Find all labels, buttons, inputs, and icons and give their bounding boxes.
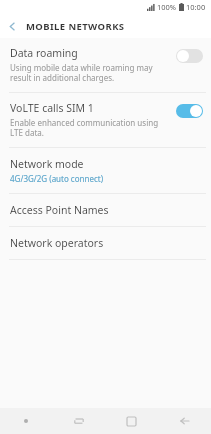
staticText: Data roaming [10,46,78,60]
button[interactable]: Switch apps [52,408,105,434]
button[interactable]: Off [176,49,203,63]
button[interactable]: Back [158,408,211,434]
staticText: 100% [157,2,177,12]
staticText: Access Point Names [10,203,109,217]
staticText: VoLTE calls SIM 1 [10,101,94,115]
staticText: Using mobile data while roaming may resu… [10,62,170,84]
staticText: Network operators [10,236,104,250]
staticText: MOBILE NETWORKS [26,20,125,33]
button[interactable]: Network operators [0,227,211,259]
button[interactable]: Data roaming [0,38,211,92]
button[interactable]: Network mode [0,148,211,193]
staticText: 10:00 [186,2,206,12]
staticText: 4G/3G/2G (auto connect) [10,173,104,184]
staticText: Network mode [10,157,84,171]
button[interactable]: VoLTE calls SIM 1 [0,93,211,147]
button[interactable]: Recent apps [105,408,158,434]
button[interactable]: Menu [0,408,52,434]
button[interactable]: Back [0,14,24,38]
button[interactable]: On [176,104,203,118]
button[interactable]: Access Point Names [0,194,211,226]
staticText: Enable enhanced communication using LTE … [10,117,170,139]
